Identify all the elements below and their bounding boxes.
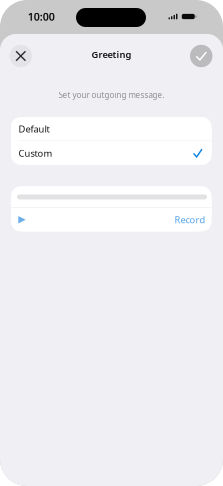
- button[interactable]: Custom: [11, 141, 211, 165]
- button[interactable]: Play: [11, 209, 32, 230]
- staticText: 10:00: [28, 9, 55, 24]
- button[interactable]: Close: [9, 45, 32, 67]
- staticText: Set your outgoing message.: [58, 90, 164, 100]
- button[interactable]: Done: [190, 45, 212, 67]
- staticText: Default: [18, 123, 49, 135]
- button[interactable]: Default: [11, 117, 211, 141]
- staticText: Greeting: [91, 48, 131, 61]
- button[interactable]: Record: [174, 209, 211, 230]
- staticText: Record: [174, 214, 205, 226]
- staticText: Custom: [18, 147, 52, 159]
